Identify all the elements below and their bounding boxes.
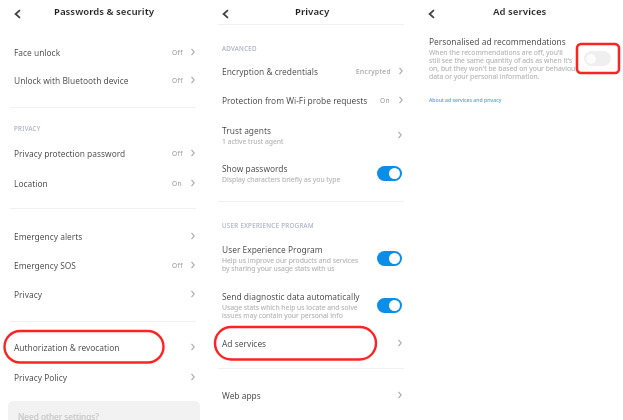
button[interactable]: Trust agents [216,121,406,149]
staticText: Ad services [222,338,267,349]
button[interactable]: Personalised ad recommendations [424,33,616,85]
button[interactable]: Location [8,169,198,197]
staticText: Emergency SOS [14,260,76,271]
staticText: Protection from Wi-Fi probe requests [222,95,368,106]
button[interactable]: Face unlock [8,38,198,66]
staticText: Ad services [493,5,547,18]
staticText: Privacy Policy [14,372,67,383]
button[interactable]: Encryption & credentials [216,57,406,85]
staticText: USER EXPERIENCE PROGRAM [222,221,314,229]
staticText: Help us improve our products and service… [222,256,359,273]
button[interactable]: Ad services [216,329,406,357]
button[interactable]: Emergency alerts [8,222,198,250]
staticText: Emergency alerts [14,231,83,242]
button[interactable]: Show passwords [216,159,406,187]
staticText: Display characters briefly as you type [222,175,341,184]
button[interactable]: Web apps [216,381,406,409]
staticText: Face unlock [14,47,61,58]
button[interactable]: Unlock with Bluetooth device [8,66,198,94]
staticText: PRIVACY [14,124,41,132]
staticText: ADVANCED [222,44,257,52]
staticText: Privacy [14,289,42,300]
staticText: Encryption & credentials [222,66,318,77]
button[interactable]: User Experience Program [216,241,406,276]
button[interactable]: Turn off [377,166,402,181]
button[interactable]: Need other settings? [8,401,200,420]
button[interactable]: Privacy [8,280,198,308]
staticText: Web apps [222,390,261,401]
button[interactable]: Back [7,4,27,24]
staticText: When the recommendations are off, you'll… [429,48,579,81]
button[interactable]: Privacy protection password [8,139,198,167]
staticText: Encrypted [356,67,391,76]
staticText: Passwords & security [54,5,155,18]
staticText: Usage stats which help us locate and sol… [222,303,358,320]
staticText: Send diagnostic data automatically [222,291,360,302]
staticText: Authorization & revocation [14,342,120,353]
staticText: On [380,96,391,105]
staticText: User Experience Program [222,244,323,255]
staticText: Off [172,261,183,270]
staticText: Off [172,48,183,57]
button[interactable]: Authorization & revocation [8,333,198,361]
staticText: Show passwords [222,163,288,174]
staticText: Unlock with Bluetooth device [14,75,129,86]
staticText: Personalised ad recommendations [429,36,566,47]
staticText: Privacy protection password [14,148,126,159]
staticText: On [172,179,183,188]
button[interactable]: Turn on [584,51,611,66]
button[interactable]: Send diagnostic data automatically [216,288,406,323]
staticText: Off [172,149,183,158]
button[interactable]: Emergency SOS [8,251,198,279]
button[interactable]: Back [215,4,235,24]
staticText: 1 active trust agent [222,137,284,146]
button[interactable]: Turn off [377,298,402,313]
staticText: Privacy [295,5,330,18]
button[interactable]: Back [421,4,441,24]
staticText: Trust agents [222,125,271,136]
staticText: Off [172,76,183,85]
button[interactable]: Turn off [377,251,402,266]
staticText: Need other settings? [18,411,99,420]
button[interactable]: Protection from Wi-Fi probe requests [216,86,406,114]
staticText: Location [14,178,48,189]
button[interactable]: Privacy Policy [8,363,198,391]
